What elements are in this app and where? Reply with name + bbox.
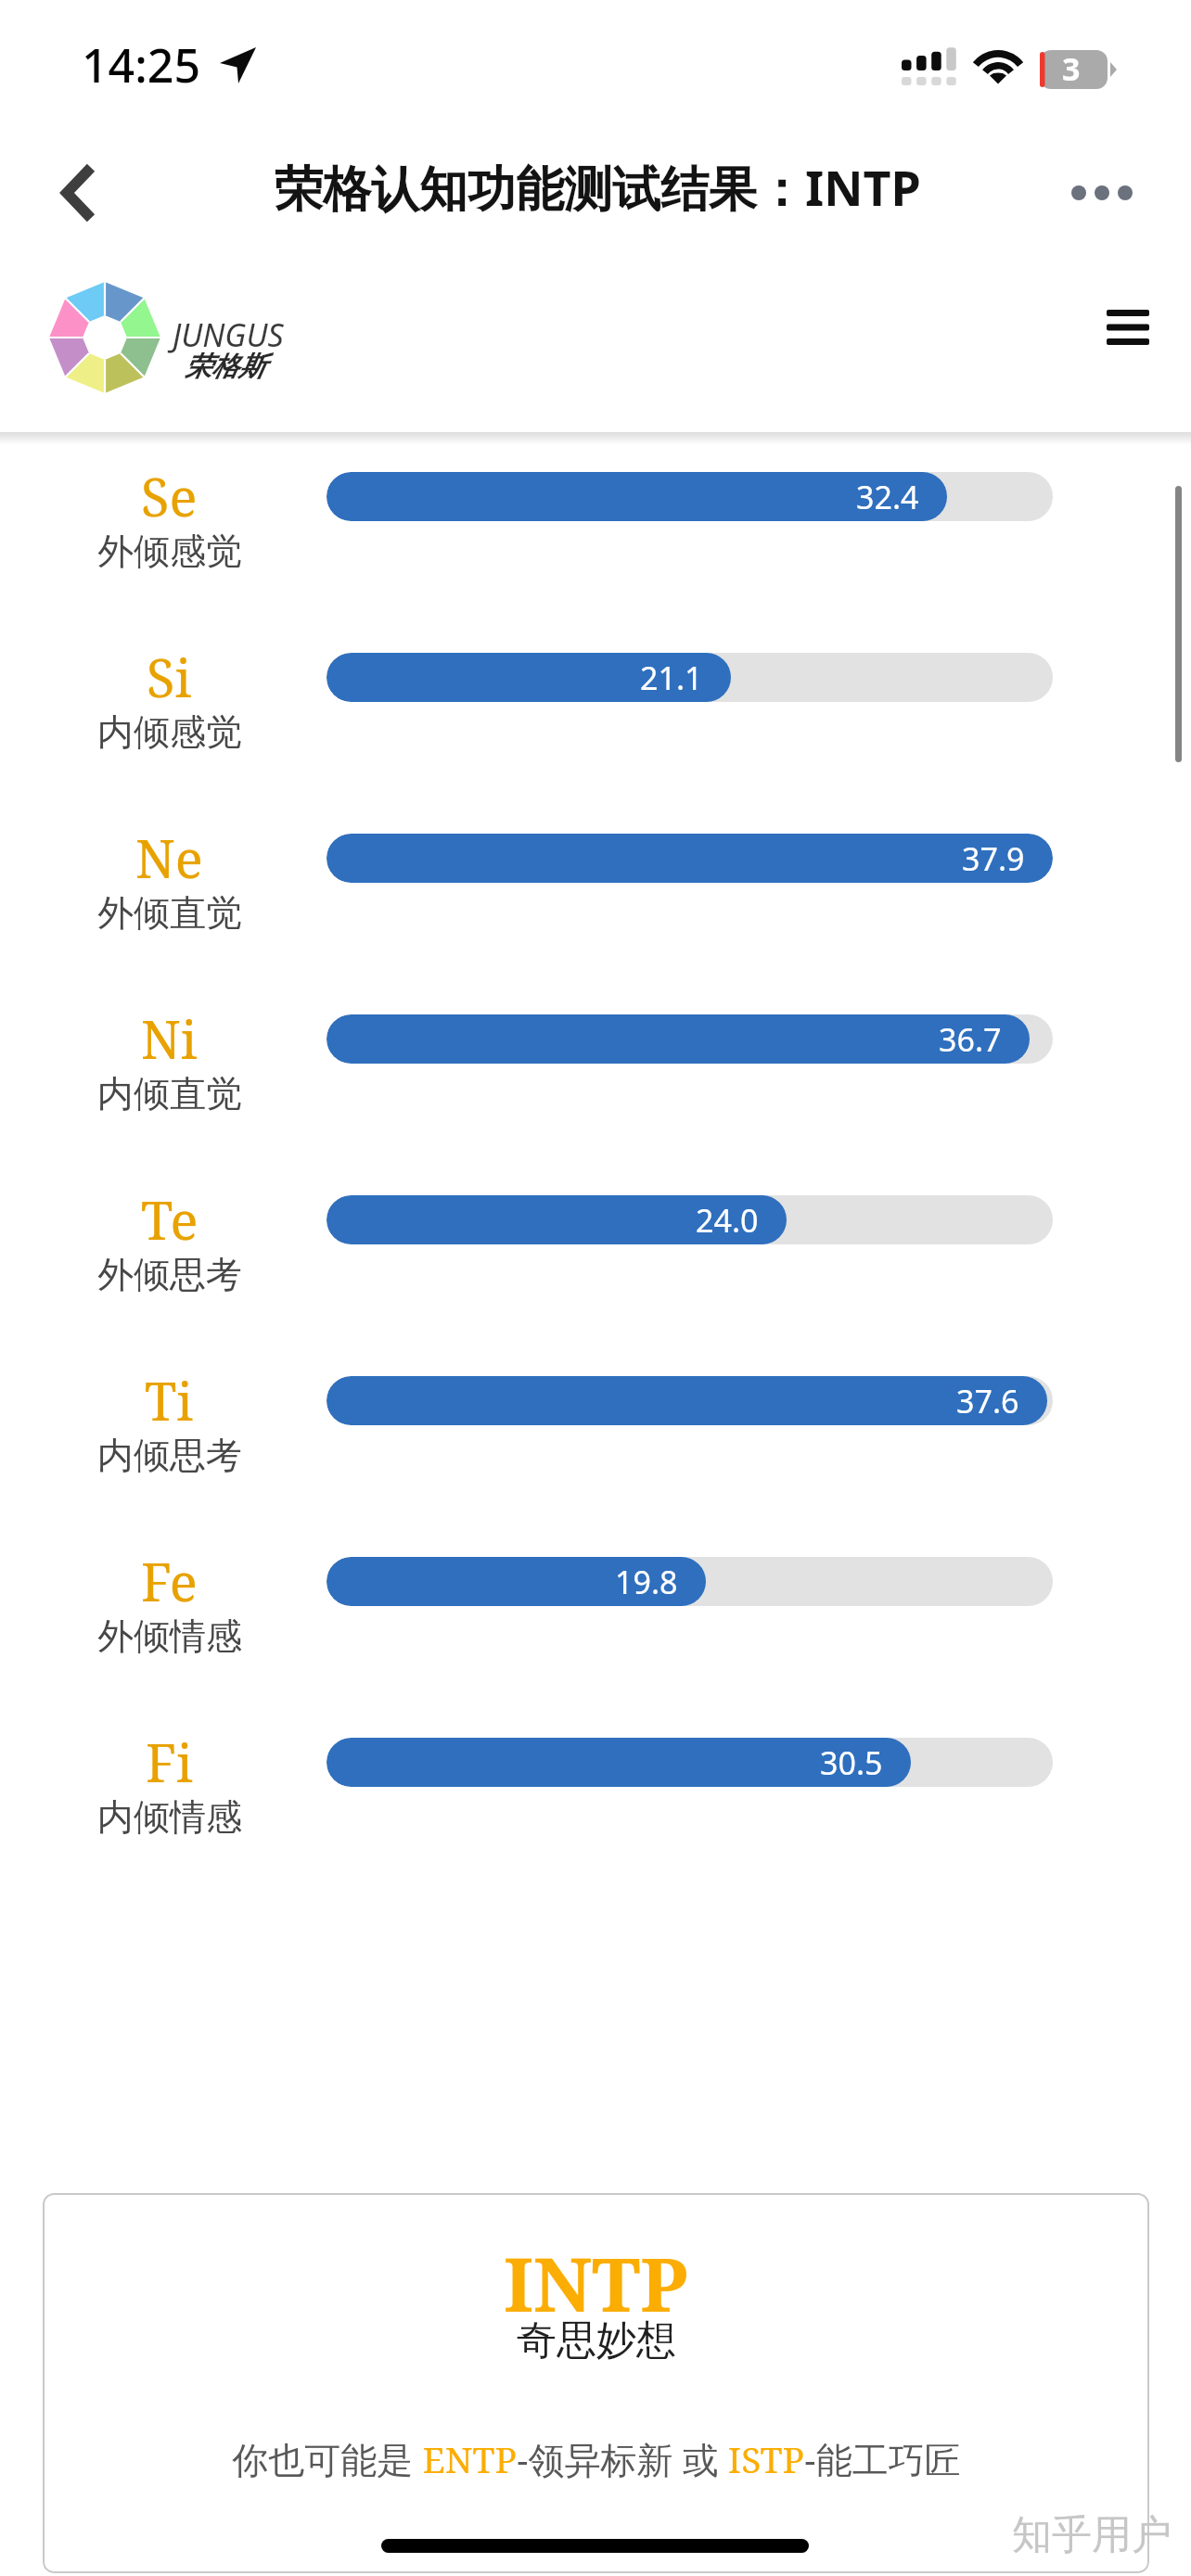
staticText: 外倾直觉 — [97, 890, 242, 936]
button[interactable]: INTP — [43, 2193, 1149, 2573]
staticText: 外倾思考 — [97, 1252, 242, 1297]
staticText: 36.7 — [939, 1018, 1002, 1061]
staticText: 内倾直觉 — [97, 1071, 242, 1116]
staticText: 24.0 — [696, 1199, 759, 1242]
staticText: 32.4 — [856, 476, 919, 518]
staticText: 你也可能是 ENTP-领异标新 或 ISTP-能工巧匠 — [232, 2434, 961, 2483]
staticText: Ne — [135, 823, 203, 893]
staticText: 荣格斯 — [185, 350, 265, 384]
staticText: 内倾情感 — [97, 1794, 242, 1840]
staticText: Si — [147, 642, 192, 712]
staticText: Ni — [141, 1003, 198, 1074]
staticText: 内倾感觉 — [97, 709, 242, 755]
staticText: JUNGUS — [173, 313, 284, 356]
staticText: 外倾感觉 — [97, 529, 242, 574]
staticText: INTP — [504, 2232, 688, 2333]
staticText: 奇思妙想 — [517, 2315, 676, 2366]
staticText: 荣格认知功能测试结果：INTP — [275, 154, 921, 220]
staticText: 21.1 — [640, 657, 703, 699]
staticText: Fi — [146, 1727, 193, 1797]
button[interactable]: Menu — [1082, 281, 1174, 374]
staticText: Fe — [141, 1546, 198, 1616]
staticText: 37.9 — [962, 837, 1025, 880]
button[interactable]: Back — [33, 141, 119, 245]
staticText: 19.8 — [615, 1561, 678, 1603]
staticText: 内倾思考 — [97, 1433, 242, 1478]
staticText: 37.6 — [956, 1380, 1019, 1422]
button[interactable]: More options — [1056, 147, 1148, 239]
staticText: Te — [141, 1184, 198, 1255]
staticText: 14:25 — [82, 33, 200, 96]
staticText: 30.5 — [820, 1741, 883, 1784]
staticText: 外倾情感 — [97, 1613, 242, 1659]
staticText: 知乎用户 — [1012, 2510, 1172, 2560]
staticText: Ti — [145, 1365, 194, 1435]
staticText: Se — [141, 461, 198, 531]
staticText: 3 — [1062, 47, 1081, 90]
